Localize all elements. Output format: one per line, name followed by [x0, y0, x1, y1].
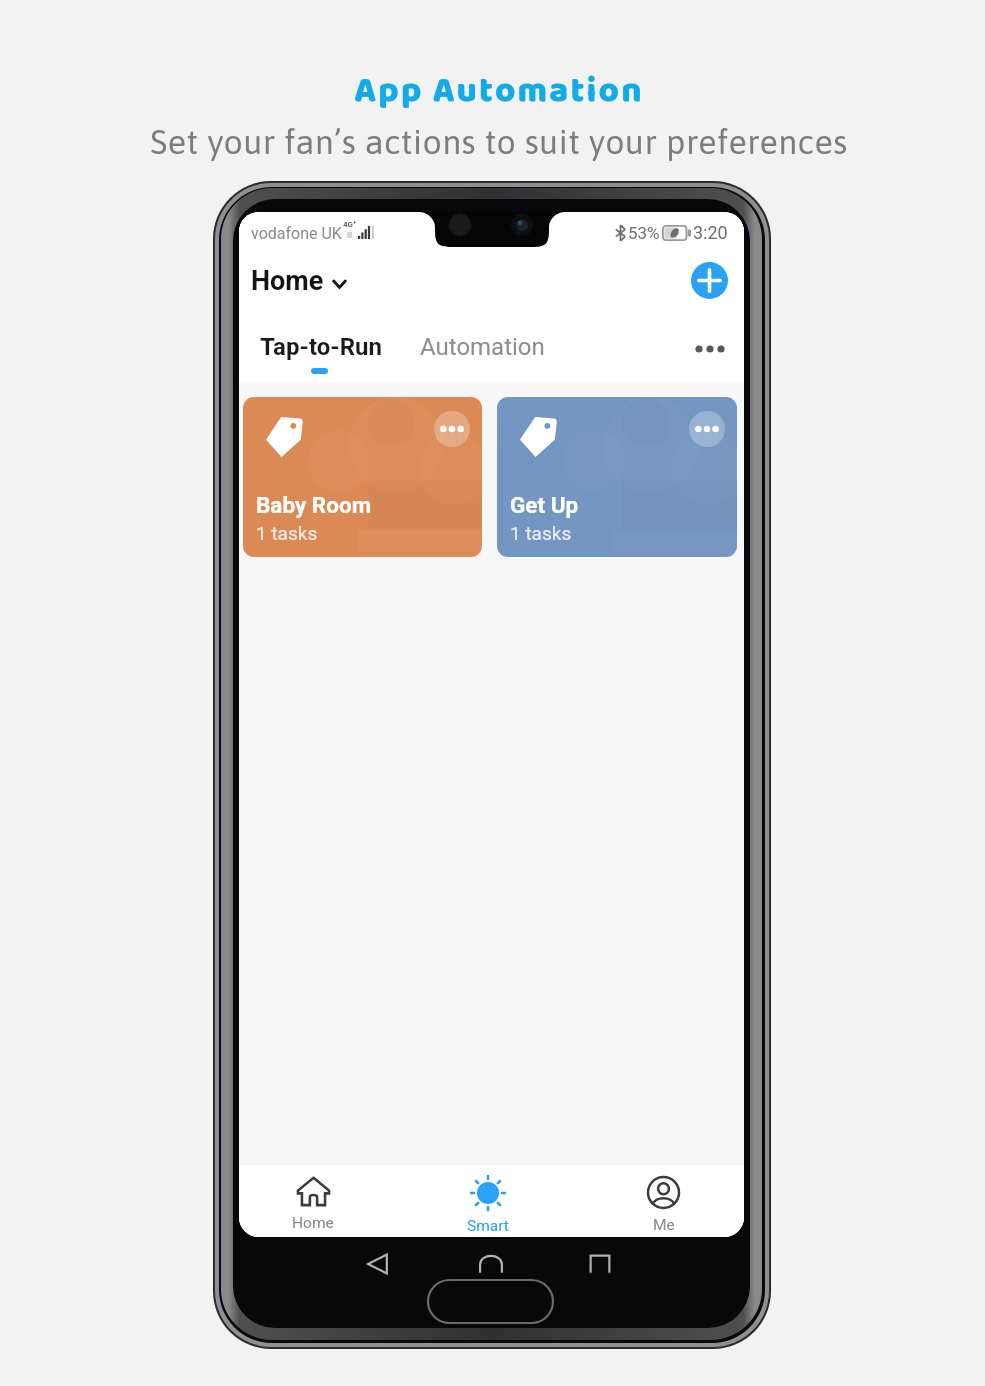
button[interactable]: Scene options — [434, 411, 470, 447]
staticText: Baby Room — [256, 492, 372, 518]
staticText: App Automation — [354, 63, 644, 119]
staticText: Tap-to-Run — [260, 333, 382, 361]
staticText: 3:20 — [693, 222, 728, 243]
staticText: 1 tasks — [510, 522, 572, 544]
button[interactable]: Scene options — [497, 397, 737, 557]
button[interactable]: Add scene — [691, 262, 728, 299]
staticText: Home — [251, 265, 324, 297]
staticText: Home — [292, 1214, 334, 1232]
staticText: 1 tasks — [256, 522, 318, 544]
staticText: Get Up — [510, 492, 579, 518]
other: Back — [365, 1251, 391, 1277]
button[interactable]: Me — [621, 1165, 705, 1237]
button[interactable]: Home — [271, 1165, 355, 1237]
button[interactable]: Scene options — [243, 397, 482, 557]
button[interactable]: Tap-to-Run — [250, 312, 386, 383]
staticText: 53% — [628, 223, 660, 243]
button[interactable]: Automation — [411, 312, 556, 383]
button[interactable]: More options — [687, 329, 733, 369]
staticText: Me — [653, 1216, 675, 1234]
button[interactable]: Home — [249, 261, 353, 301]
button[interactable]: Scene options — [689, 411, 725, 447]
staticText: 4G⁺ — [343, 220, 357, 229]
staticText: Automation — [420, 333, 545, 361]
other: Home — [478, 1251, 504, 1277]
staticText: vodafone UK — [251, 224, 342, 243]
button[interactable]: Smart — [446, 1165, 530, 1237]
other: Recent apps — [587, 1251, 613, 1277]
staticText: Set your fan’s actions to suit your pref… — [150, 122, 848, 161]
staticText: Smart — [467, 1217, 509, 1235]
